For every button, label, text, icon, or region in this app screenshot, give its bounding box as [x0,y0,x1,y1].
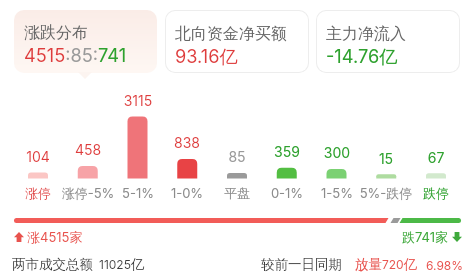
button[interactable]: 涨4515家 [14,229,83,245]
staticText: 300 [307,144,367,161]
button[interactable]: 平盘 [202,185,272,201]
staticText: 跌停 [401,185,471,201]
staticText: 67 [406,149,466,166]
other: 涨跌家数比例 [14,218,461,223]
button[interactable]: 跌停 [401,185,471,201]
staticText: 涨停 [3,185,73,201]
staticText: 6.98% [426,258,464,272]
staticText: 涨跌分布 [24,23,88,43]
staticText: 平盘 [202,185,272,201]
button[interactable]: 涨跌分布 [14,10,157,73]
button[interactable]: 0-1% [252,185,322,201]
staticText: 涨4515家 [27,229,83,245]
staticText: 涨停-5% [53,185,123,201]
staticText: 放量720亿 [355,256,418,272]
staticText: 458 [58,141,118,158]
button[interactable]: 1-0% [152,185,222,201]
button[interactable]: 两市成交总额 [12,256,145,272]
staticText: 5-1% [103,185,173,201]
button[interactable]: 较前一日同期 [261,256,464,272]
staticText: 838 [157,134,217,151]
staticText: 北向资金净买额 [175,24,287,44]
staticText: 359 [257,143,317,160]
staticText: -14.76亿 [326,45,398,68]
staticText: 5%-跌停 [351,185,421,201]
staticText: 两市成交总额 [12,256,93,272]
button[interactable]: 5%-跌停 [351,185,421,201]
staticText: 11025亿 [99,256,145,272]
button[interactable]: 跌741家 [402,229,462,245]
button[interactable]: 涨停 [3,185,73,201]
staticText: 85 [207,148,267,165]
staticText: 0-1% [252,185,322,201]
staticText: 较前一日同期 [261,256,342,272]
staticText: 1-0% [152,185,222,201]
staticText: 主力净流入 [326,24,406,44]
button[interactable]: 北向资金净买额 [165,10,309,73]
button[interactable]: 主力净流入 [316,10,460,73]
staticText: 104 [8,148,68,165]
staticText: 15 [356,150,416,167]
staticText: 1-5% [302,185,372,201]
button[interactable]: 5-1% [103,185,173,201]
staticText: 跌741家 [402,229,449,245]
staticText: 3115 [108,92,168,109]
button[interactable]: 涨停-5% [53,185,123,201]
staticText: 4515:85:741 [24,44,127,66]
staticText: 93.16亿 [175,45,238,68]
button[interactable]: 1-5% [302,185,372,201]
